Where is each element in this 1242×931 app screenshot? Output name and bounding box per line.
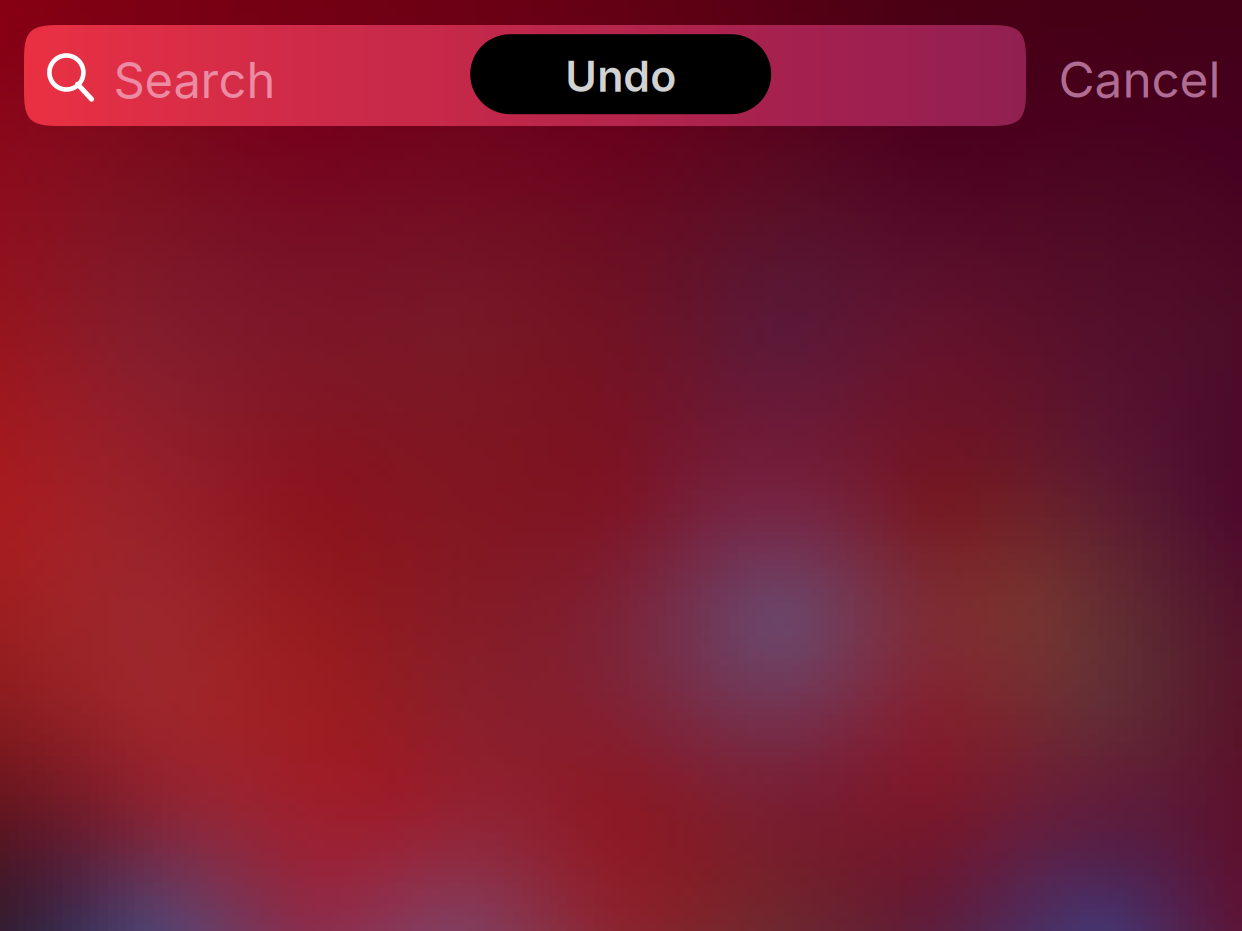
button[interactable]: Cancel: [1039, 29, 1239, 130]
button[interactable]: Undo: [470, 34, 771, 114]
staticText: Cancel: [1058, 49, 1220, 109]
button[interactable]: Search: [24, 25, 1026, 126]
staticText: Undo: [565, 50, 676, 102]
staticText: Search: [113, 51, 275, 110]
